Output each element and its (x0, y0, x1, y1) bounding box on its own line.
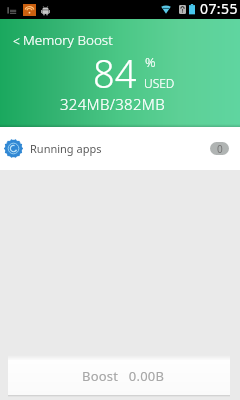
button[interactable]: Running apps (0, 127, 240, 170)
staticText: 324MB/382MB (60, 94, 165, 114)
staticText: USED (144, 75, 175, 91)
staticText: 84 (93, 47, 137, 99)
staticText: Boost 0.00B (82, 367, 165, 385)
staticText: Running apps (30, 141, 102, 156)
button[interactable]: < (9, 27, 119, 53)
button[interactable]: Boost 0.00B (8, 360, 230, 395)
staticText: % (145, 53, 156, 71)
staticText: 07:55 (200, 0, 238, 18)
staticText: Memory Boost (23, 31, 113, 49)
staticText: 0 (217, 142, 223, 155)
staticText: < (13, 33, 20, 49)
